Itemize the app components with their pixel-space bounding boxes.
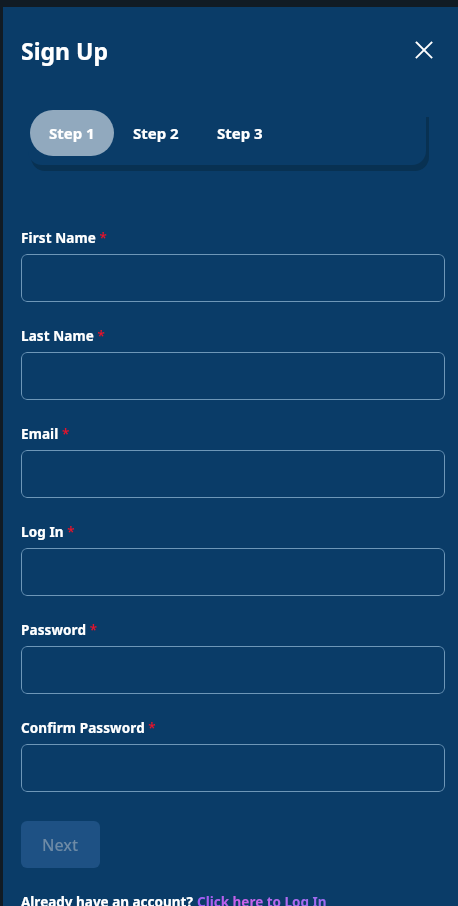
staticText: Step 3: [217, 123, 263, 143]
staticText: Already have an account?: [21, 893, 197, 906]
staticText: Log In *: [21, 523, 75, 541]
staticText: Next: [42, 834, 79, 856]
button[interactable]: Already have an account?: [21, 893, 327, 906]
staticText: Step 1: [49, 123, 95, 143]
button[interactable]: [21, 548, 445, 596]
button[interactable]: [21, 352, 445, 400]
button[interactable]: Step 1: [30, 110, 114, 156]
button[interactable]: Close: [402, 28, 446, 72]
button[interactable]: [21, 254, 445, 302]
button[interactable]: Next: [21, 821, 100, 868]
staticText: Step 2: [133, 123, 179, 143]
button[interactable]: Step 3: [198, 110, 282, 156]
staticText: Confirm Password *: [21, 719, 156, 737]
staticText: Last Name *: [21, 327, 105, 345]
button[interactable]: [21, 744, 445, 792]
button[interactable]: [21, 450, 445, 498]
staticText: First Name *: [21, 229, 107, 247]
staticText: Sign Up: [21, 35, 108, 66]
staticText: Password *: [21, 621, 98, 639]
button[interactable]: [21, 646, 445, 694]
staticText: Email *: [21, 425, 70, 443]
button[interactable]: Step 2: [114, 110, 198, 156]
staticText: Click here to Log In: [197, 893, 327, 906]
